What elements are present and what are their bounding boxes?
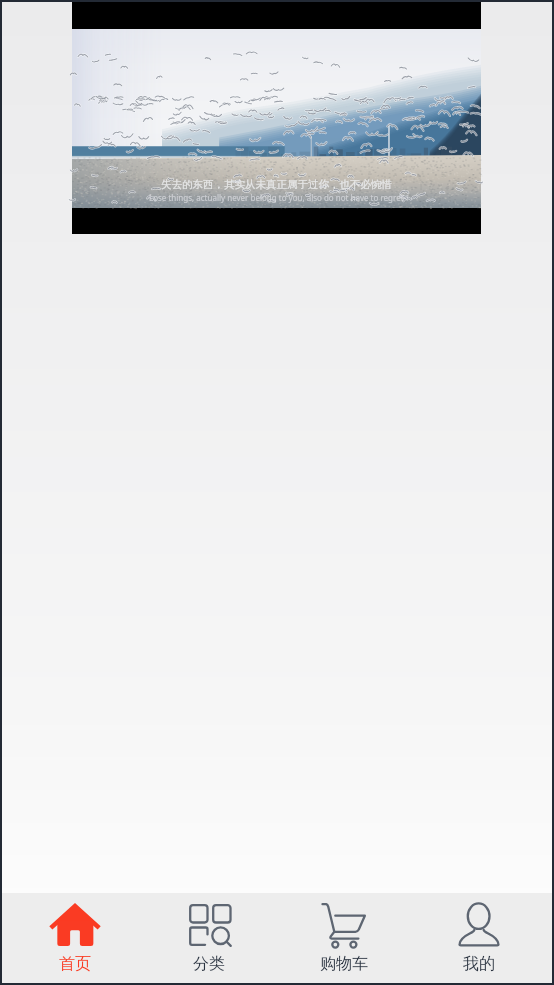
staticText: 我的: [463, 954, 495, 974]
button[interactable]: Profile: [411, 893, 546, 983]
staticText: Lose things, actually never belong to yo…: [149, 192, 404, 203]
button[interactable]: Cart: [276, 893, 411, 983]
staticText: 购物车: [320, 954, 368, 974]
button[interactable]: Home: [8, 893, 142, 983]
staticText: 失去的东西，其实从未真正属于过你，也不必惋惜: [161, 178, 392, 191]
staticText: 分类: [193, 954, 225, 974]
staticText: 首页: [59, 954, 91, 974]
button[interactable]: Categories: [142, 893, 276, 983]
